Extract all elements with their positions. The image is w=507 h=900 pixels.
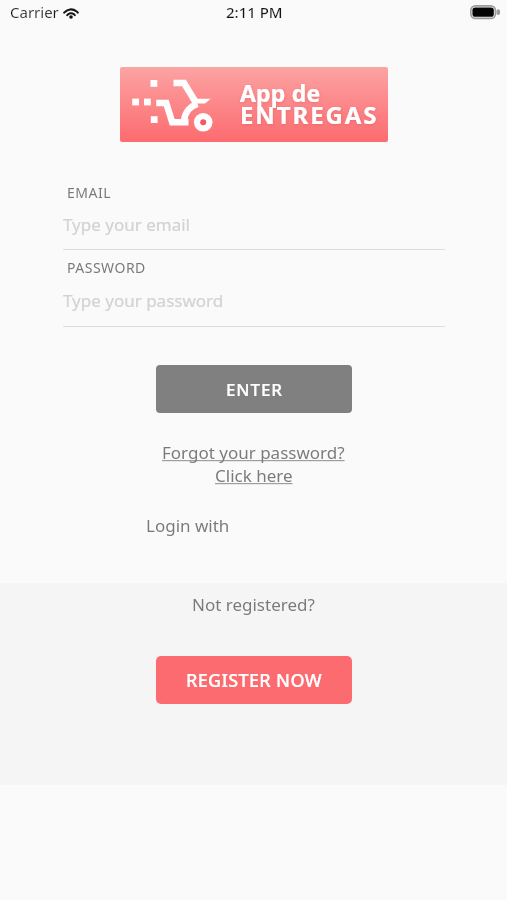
staticText: PASSWORD bbox=[67, 258, 146, 277]
button[interactable]: Login with bbox=[146, 514, 230, 537]
button[interactable]: Type your email bbox=[63, 213, 190, 236]
staticText: ENTREGAS bbox=[240, 98, 379, 131]
staticText: EMAIL bbox=[67, 183, 112, 202]
button[interactable]: REGISTER NOW bbox=[156, 656, 352, 704]
button[interactable]: Forgot your password? bbox=[0, 441, 507, 487]
staticText: Forgot your password? bbox=[162, 441, 345, 464]
staticText: REGISTER NOW bbox=[186, 668, 322, 693]
staticText: Not registered? bbox=[192, 593, 315, 616]
other: Battery full bbox=[470, 5, 500, 20]
staticText: Carrier bbox=[10, 2, 59, 22]
staticText: Click here bbox=[215, 464, 293, 487]
staticText: App de bbox=[240, 77, 321, 108]
button[interactable]: Type your password bbox=[63, 289, 224, 312]
staticText: ENTER bbox=[226, 378, 283, 401]
staticText: 2:11 PM bbox=[226, 2, 283, 22]
button[interactable]: ENTER bbox=[156, 365, 352, 413]
other: Wi-Fi bbox=[62, 5, 80, 19]
button[interactable]: App de Entregas logo bbox=[120, 67, 388, 142]
staticText: Login with bbox=[146, 514, 230, 537]
